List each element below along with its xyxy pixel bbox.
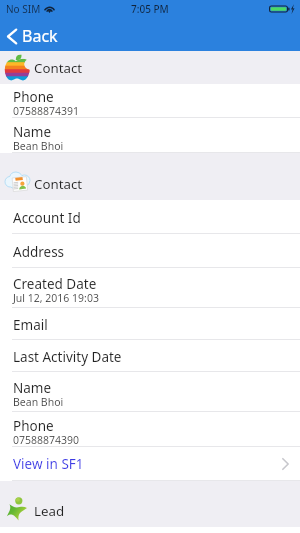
button[interactable]: View in SF1 (0, 447, 300, 481)
staticText: Created Date (13, 278, 97, 292)
staticText: 07588874391 (13, 106, 80, 117)
button[interactable]: Name (0, 118, 300, 153)
button[interactable]: Phone (0, 412, 300, 447)
staticText: Account Id (13, 212, 81, 226)
staticText: Last Activity Date (13, 351, 122, 365)
button[interactable]: Email (0, 308, 300, 340)
staticText: Contact (34, 59, 83, 77)
staticText: Jul 12, 2016 19:03 (13, 293, 99, 304)
staticText: 7:05 PM (131, 2, 169, 16)
staticText: Name (13, 382, 52, 396)
staticText: Bean Bhoi (13, 397, 64, 408)
button[interactable]: Last Activity Date (0, 340, 300, 372)
button[interactable]: Address (0, 234, 300, 268)
button[interactable]: Name (0, 372, 300, 412)
staticText: No SIM (6, 2, 41, 16)
staticText: Name (13, 126, 52, 140)
button[interactable]: Phone (0, 84, 300, 118)
staticText: Back (22, 25, 58, 47)
staticText: Phone (13, 420, 54, 434)
staticText: 07588874390 (13, 435, 80, 446)
staticText: Email (13, 319, 48, 333)
button[interactable]: Back (0, 21, 70, 51)
staticText: View in SF1 (13, 455, 84, 473)
staticText: Bean Bhoi (13, 141, 64, 152)
staticText: Lead (34, 502, 65, 520)
staticText: Contact (34, 175, 83, 193)
button[interactable]: Account Id (0, 200, 300, 234)
button[interactable]: Created Date (0, 268, 300, 308)
staticText: Phone (13, 91, 54, 105)
staticText: Address (13, 246, 65, 260)
